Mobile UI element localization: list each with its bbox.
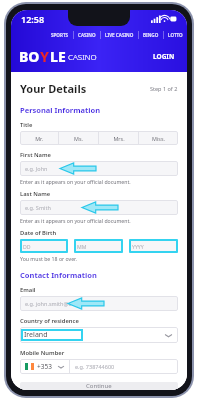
staticText: Ireland — [24, 330, 48, 340]
staticText: e.g. 738744600 — [75, 363, 115, 370]
staticText: Step 1 of 2 — [150, 85, 178, 92]
button[interactable]: e.g. John — [20, 161, 178, 176]
button[interactable]: Mr. — [20, 131, 58, 145]
button[interactable]: YYYY — [129, 239, 178, 253]
staticText: 12:58 — [21, 13, 45, 25]
staticText: Country of residence — [20, 317, 79, 325]
button[interactable]: CASINO — [74, 30, 100, 40]
staticText: Miss. — [152, 135, 165, 142]
staticText: Mrs. — [113, 135, 125, 142]
staticText: BO — [19, 47, 40, 66]
staticText: DD — [23, 243, 31, 250]
button[interactable]: Select country code — [20, 362, 69, 371]
staticText: Ms. — [74, 135, 83, 142]
button[interactable]: DD — [20, 239, 68, 253]
staticText: First Name — [20, 151, 51, 159]
staticText: Enter as it appears on your official doc… — [20, 217, 131, 224]
button[interactable]: LOGIN — [149, 49, 179, 64]
button[interactable]: e.g. 738744600 — [70, 359, 178, 374]
staticText: e.g. John — [25, 165, 48, 172]
staticText: Mobile Number — [20, 349, 65, 357]
staticText: Your Details — [20, 81, 87, 96]
staticText: e.g. Smith — [25, 204, 51, 211]
button[interactable]: Ms. — [59, 131, 98, 145]
button[interactable]: LIVE CASINO — [101, 30, 138, 40]
staticText: Mr. — [35, 135, 43, 142]
staticText: Last Name — [20, 190, 51, 198]
staticText: YYYY — [132, 243, 144, 250]
button[interactable]: MM — [74, 239, 123, 253]
staticText: Contact Information — [20, 270, 97, 280]
staticText: Email — [20, 286, 36, 294]
button[interactable]: LOTTO — [164, 30, 187, 40]
staticText: MM — [77, 243, 87, 250]
button[interactable]: e.g. Smith — [20, 200, 178, 215]
staticText: Personal Information — [20, 105, 101, 115]
staticText: LOTTO — [168, 32, 183, 38]
staticText: Date of Birth — [20, 229, 57, 237]
button[interactable]: Mrs. — [99, 131, 138, 145]
staticText: LOGIN — [153, 52, 175, 61]
staticText: BINGO — [143, 32, 159, 38]
button[interactable]: Continue — [20, 382, 178, 390]
staticText: SPORTS — [51, 32, 69, 38]
staticText: You must be 18 or over. — [20, 255, 77, 262]
staticText: +353 — [37, 362, 52, 371]
staticText: Enter as it appears on your official doc… — [20, 178, 131, 185]
staticText: LIVE CASINO — [105, 32, 134, 38]
button[interactable]: SPORTS — [47, 30, 73, 40]
button[interactable]: e.g. john.smith@email.com — [20, 296, 178, 311]
staticText: CASINO — [78, 32, 96, 38]
button[interactable]: Miss. — [139, 131, 178, 145]
staticText: Title — [20, 121, 33, 129]
staticText: Y — [40, 47, 50, 66]
staticText: LE — [50, 47, 66, 66]
button[interactable]: Ireland — [20, 327, 178, 343]
staticText: CASINO — [68, 51, 97, 62]
staticText: e.g. john.smith@email.com — [25, 300, 96, 307]
button[interactable]: BINGO — [139, 30, 163, 40]
staticText: Continue — [86, 382, 112, 390]
